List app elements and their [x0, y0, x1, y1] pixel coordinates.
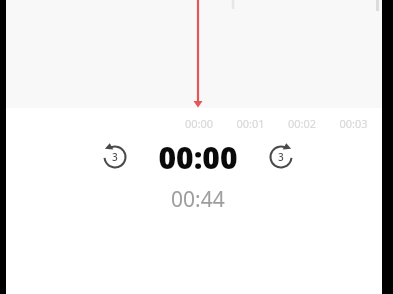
button[interactable]: Total duration 00:44 [160, 186, 236, 212]
button[interactable]: Current position 00:00 [148, 140, 248, 174]
button[interactable]: Forward 3 seconds [263, 139, 299, 175]
button[interactable]: Audio timeline scrubber [6, 0, 382, 108]
button[interactable]: Replay 3 seconds [97, 139, 133, 175]
